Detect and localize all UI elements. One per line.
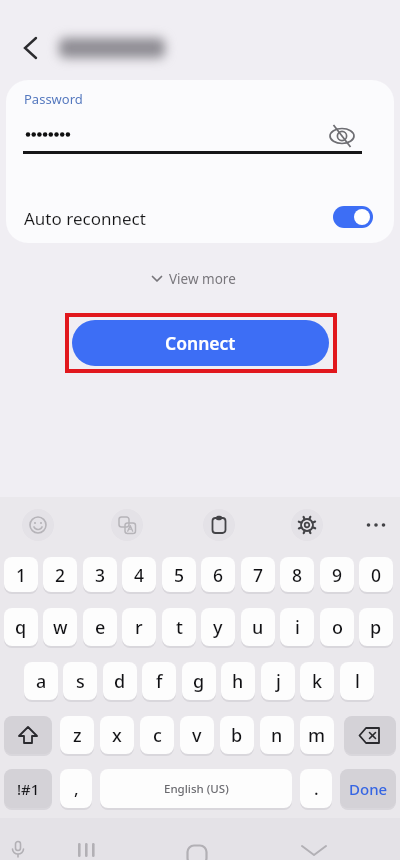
staticText: w (53, 615, 68, 640)
staticText: . (314, 777, 319, 800)
staticText: d (114, 669, 126, 694)
staticText: g (193, 669, 205, 694)
button[interactable]: 6 (201, 557, 235, 592)
button[interactable]: l (340, 662, 374, 700)
staticText: l (355, 669, 360, 694)
button[interactable]: q (4, 608, 38, 646)
staticText: 9 (332, 563, 343, 587)
staticText: z (73, 723, 82, 748)
staticText: y (213, 615, 223, 640)
button[interactable]: 9 (320, 557, 354, 592)
button[interactable] (111, 509, 143, 541)
button[interactable] (12, 30, 48, 66)
button[interactable] (186, 844, 210, 860)
button[interactable]: Connect (72, 320, 329, 366)
staticText: q (15, 615, 27, 640)
staticText: Password (24, 90, 83, 108)
button[interactable]: View more (152, 268, 236, 290)
button[interactable] (360, 509, 392, 541)
button[interactable]: b (220, 716, 254, 754)
button[interactable]: j (261, 662, 295, 700)
button[interactable]: t (162, 608, 196, 646)
staticText: Done (349, 779, 388, 799)
staticText: k (312, 669, 323, 694)
staticText: 6 (213, 563, 224, 587)
staticText: f (156, 669, 163, 694)
button[interactable]: 4 (122, 557, 156, 592)
button[interactable]: 1 (4, 557, 38, 592)
button[interactable] (318, 118, 366, 154)
staticText: a (36, 669, 47, 694)
button[interactable]: x (100, 716, 134, 754)
staticText: p (370, 615, 382, 640)
button[interactable]: !#1 (4, 769, 52, 808)
button[interactable] (4, 716, 52, 754)
staticText: i (295, 615, 300, 640)
button[interactable]: m (300, 716, 334, 754)
staticText: n (271, 723, 283, 748)
button[interactable]: n (260, 716, 294, 754)
button[interactable]: v (180, 716, 214, 754)
staticText: 4 (134, 563, 145, 587)
button[interactable]: i (280, 608, 314, 646)
staticText: v (192, 723, 202, 748)
button[interactable] (344, 716, 396, 754)
button[interactable]: k (300, 662, 334, 700)
staticText: b (231, 723, 243, 748)
button[interactable]: 7 (241, 557, 275, 592)
button[interactable] (22, 509, 54, 541)
button[interactable] (203, 509, 235, 541)
button[interactable]: c (140, 716, 174, 754)
button[interactable]: Done (340, 769, 396, 808)
staticText: u (252, 615, 264, 640)
staticText: c (153, 723, 162, 748)
button[interactable]: p (359, 608, 393, 646)
staticText: o (332, 615, 343, 640)
button[interactable]: g (182, 662, 216, 700)
button[interactable]: u (241, 608, 275, 646)
staticText: Auto reconnect (24, 207, 146, 230)
button[interactable]: 8 (280, 557, 314, 592)
staticText: 5 (174, 563, 185, 587)
staticText: h (232, 669, 244, 694)
button[interactable]: w (43, 608, 77, 646)
button[interactable] (6, 840, 30, 860)
button[interactable]: r (122, 608, 156, 646)
button[interactable]: h (221, 662, 255, 700)
staticText: 7 (253, 563, 264, 587)
button[interactable]: English (US) (100, 769, 292, 808)
button[interactable] (291, 509, 323, 541)
staticText: j (276, 669, 281, 694)
staticText: s (76, 669, 85, 694)
staticText: !#1 (17, 779, 40, 799)
button[interactable]: . (300, 769, 332, 808)
button[interactable]: z (60, 716, 94, 754)
staticText: View more (169, 270, 236, 288)
staticText: e (95, 615, 106, 640)
button[interactable]: y (201, 608, 235, 646)
staticText: 2 (55, 563, 66, 587)
staticText: 0 (371, 563, 382, 587)
button[interactable]: s (63, 662, 97, 700)
button[interactable]: e (83, 608, 117, 646)
button[interactable]: 5 (162, 557, 196, 592)
staticText: r (135, 615, 143, 640)
button[interactable] (298, 842, 330, 858)
button[interactable]: d (103, 662, 137, 700)
staticText: x (112, 723, 122, 748)
button[interactable]: a (24, 662, 58, 700)
button[interactable]: o (320, 608, 354, 646)
button[interactable]: 0 (359, 557, 393, 592)
button[interactable]: , (60, 769, 92, 808)
button[interactable]: 3 (83, 557, 117, 592)
staticText: 3 (95, 563, 106, 587)
button[interactable]: f (142, 662, 176, 700)
button[interactable]: 2 (43, 557, 77, 592)
button[interactable] (72, 840, 100, 860)
staticText: 1 (16, 563, 27, 587)
staticText: m (308, 723, 326, 748)
button[interactable] (333, 206, 373, 228)
staticText: t (176, 615, 183, 640)
staticText: Connect (165, 331, 236, 355)
staticText: 8 (292, 563, 303, 587)
